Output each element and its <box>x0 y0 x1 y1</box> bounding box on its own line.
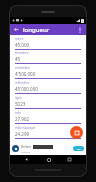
staticText: mètre <box>15 37 24 41</box>
button[interactable]: mètre <box>14 37 82 51</box>
button[interactable]: Retour <box>22 155 31 164</box>
staticText: mile <box>15 111 22 115</box>
staticText: OK <box>77 147 81 150</box>
staticText: 45'000.000 <box>15 86 38 92</box>
staticText: kilomètre <box>15 51 29 55</box>
button[interactable]: mile <box>14 110 82 125</box>
staticText: 4'500.000 <box>15 71 36 77</box>
staticText: longueur <box>23 26 50 34</box>
button[interactable]: Retour <box>12 25 21 34</box>
button[interactable]: centimètre <box>14 65 82 80</box>
button[interactable]: ligne <box>14 95 82 110</box>
button[interactable]: Copier <box>70 126 83 139</box>
staticText: Brillant <box>21 145 32 149</box>
staticText: Installer <box>21 150 31 153</box>
button[interactable]: kilomètre <box>14 51 82 65</box>
staticText: 45 <box>15 56 21 62</box>
staticText: centimètre <box>15 66 31 70</box>
button[interactable]: Applications récentes <box>65 155 74 164</box>
button[interactable]: mille nautique <box>14 125 82 140</box>
staticText: mille nautique <box>15 126 36 130</box>
button[interactable]: Plus d'options <box>75 25 84 34</box>
button[interactable]: Brillant <box>10 142 86 155</box>
staticText: 27.962 <box>15 116 30 122</box>
staticText: millimètre <box>15 81 30 85</box>
staticText: ligne <box>15 96 22 100</box>
staticText: 45.000 <box>15 42 30 48</box>
staticText: 5023 <box>15 101 26 107</box>
button[interactable]: OK <box>73 146 84 151</box>
button[interactable]: Accueil <box>44 155 53 164</box>
staticText: 24.299 <box>15 131 30 137</box>
button[interactable]: millimètre <box>14 80 82 95</box>
